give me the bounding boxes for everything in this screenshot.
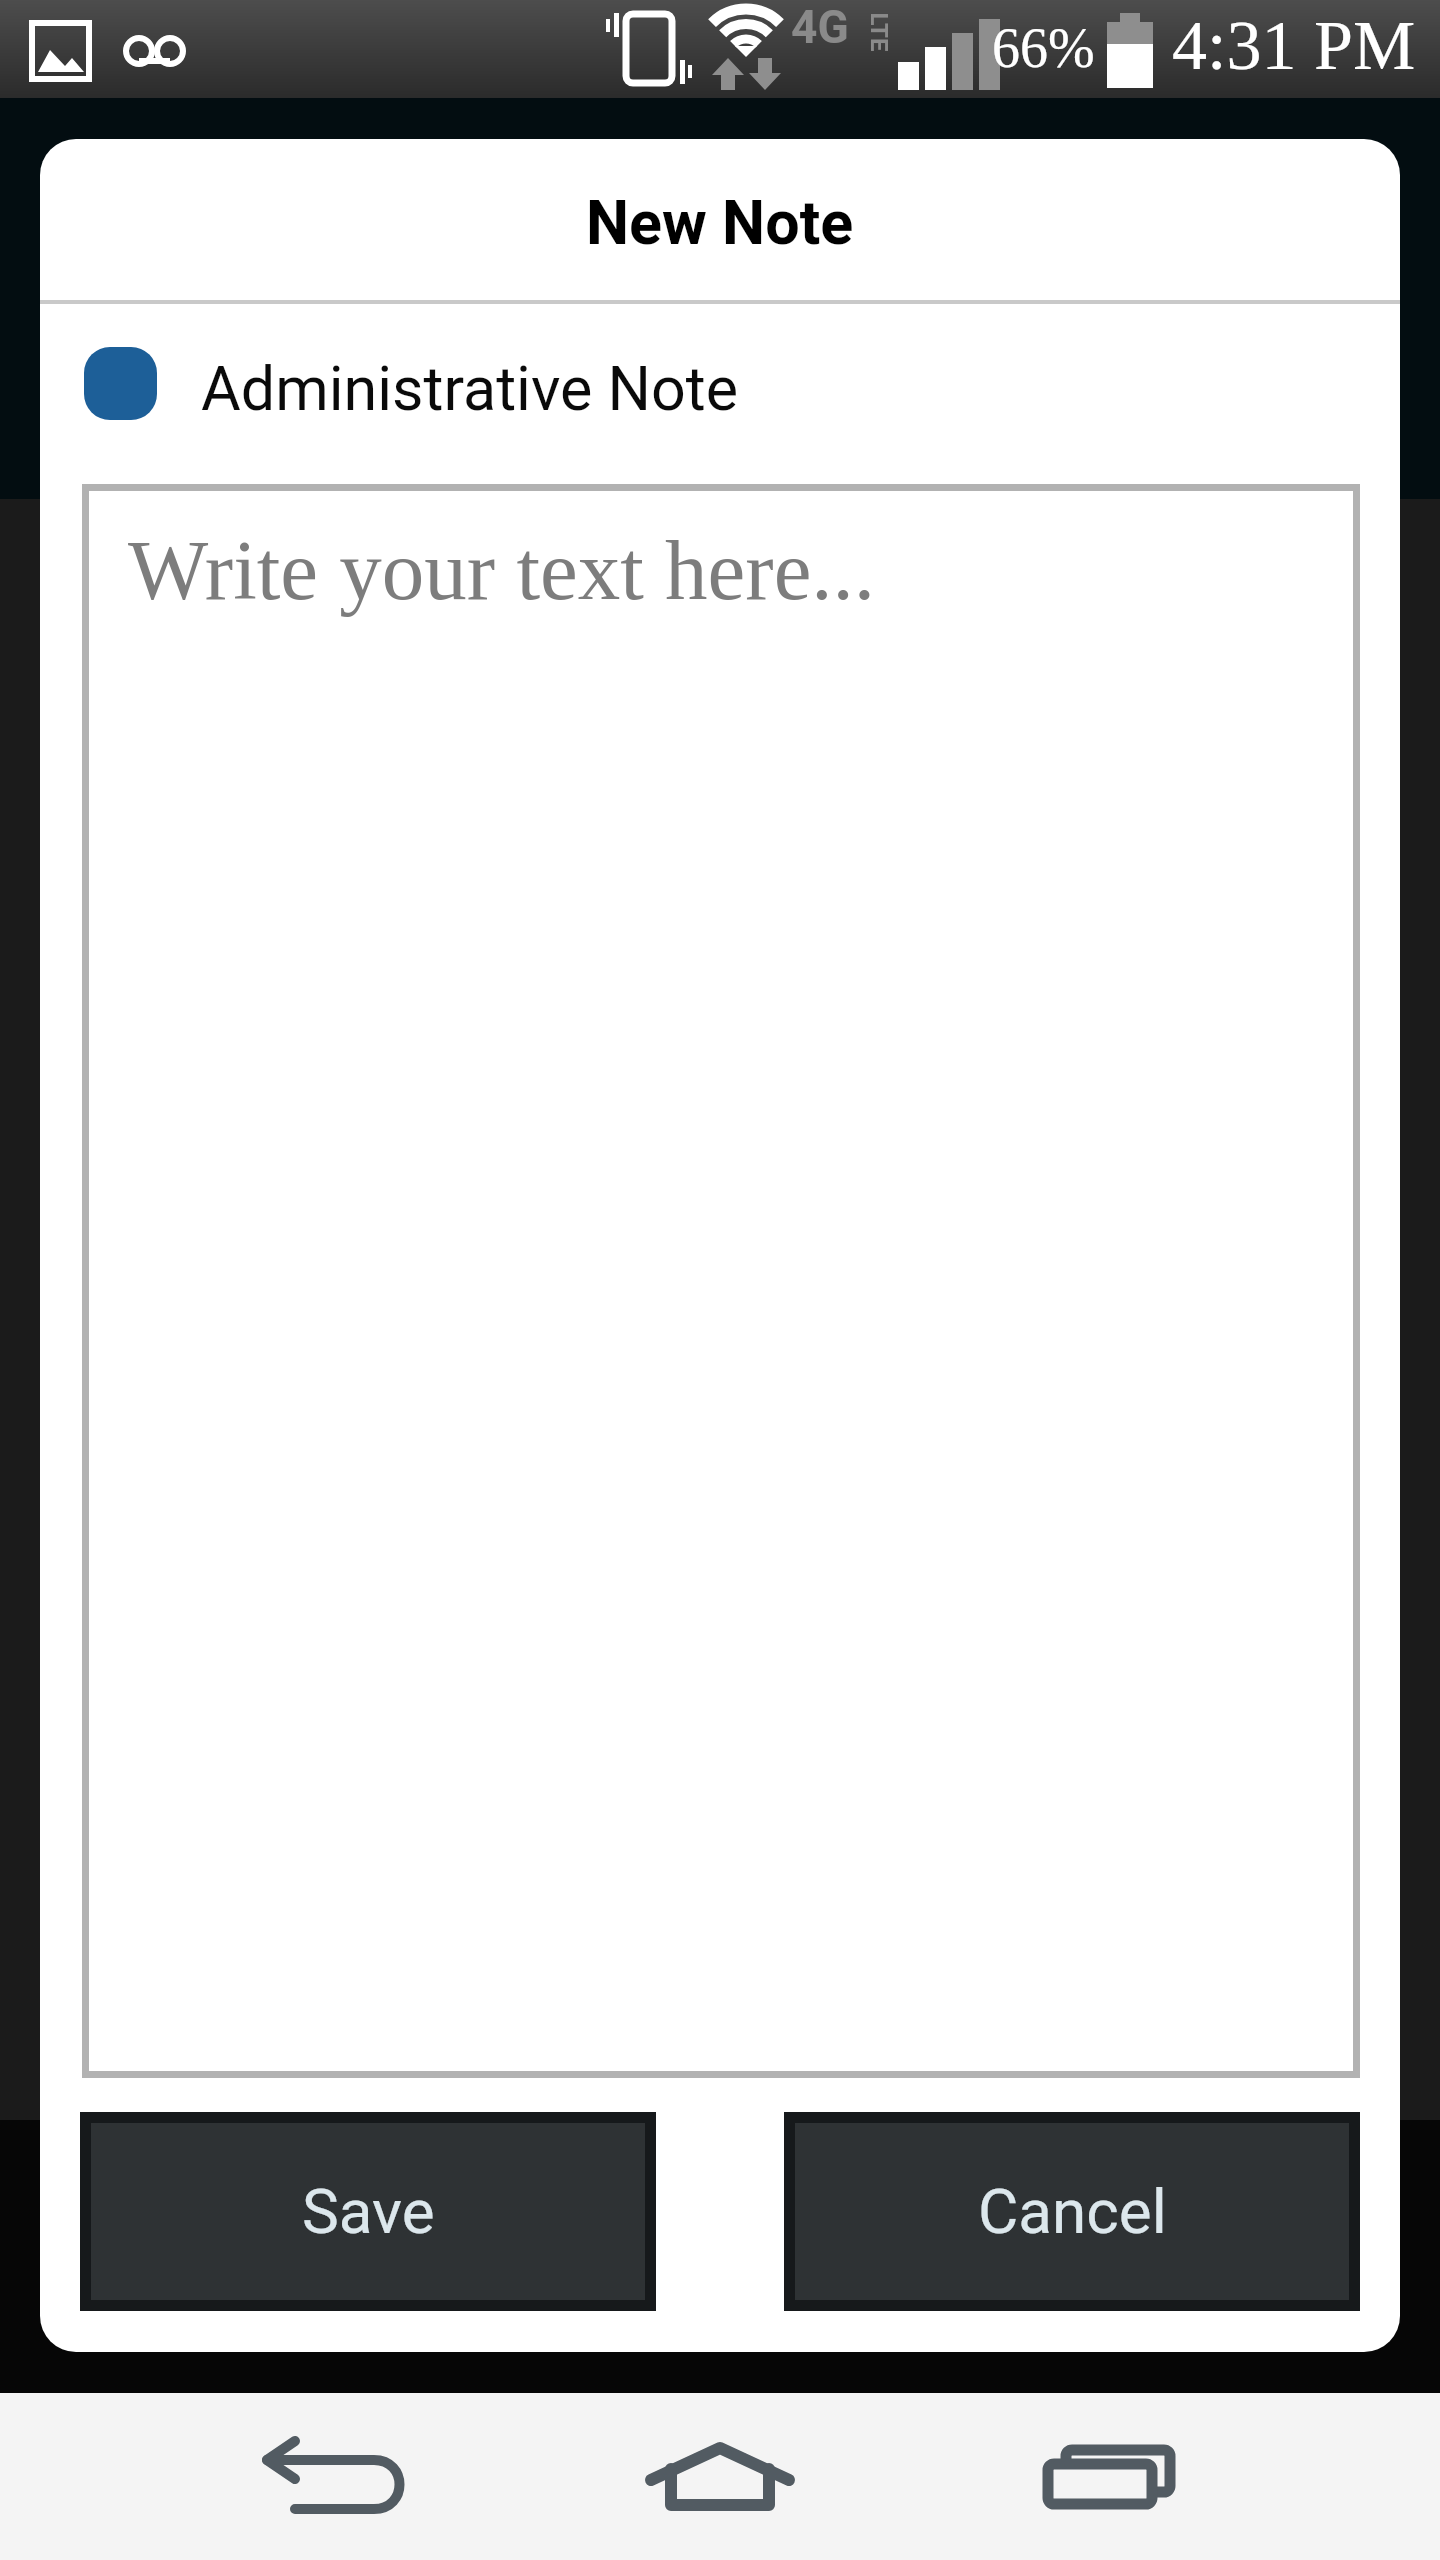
staticText: 4G	[791, 0, 849, 54]
staticText: Save	[302, 2175, 435, 2248]
staticText: 4:31 PM	[1172, 7, 1416, 85]
staticText: Cancel	[978, 2175, 1167, 2248]
button[interactable]: Write your text here...	[82, 484, 1360, 2078]
button[interactable]: Home	[540, 2393, 900, 2560]
staticText: LTE	[864, 12, 892, 51]
button[interactable]: Recent apps	[929, 2393, 1289, 2560]
button[interactable]: Administrative Note	[40, 303, 1400, 484]
staticText: New Note	[586, 187, 854, 258]
staticText: Administrative Note	[201, 353, 739, 424]
button[interactable]: Back	[151, 2393, 511, 2560]
button[interactable]: Cancel	[795, 2123, 1349, 2300]
button[interactable]: Save	[91, 2123, 645, 2300]
staticText: 66%	[992, 17, 1095, 79]
staticText: Write your text here...	[128, 523, 876, 617]
